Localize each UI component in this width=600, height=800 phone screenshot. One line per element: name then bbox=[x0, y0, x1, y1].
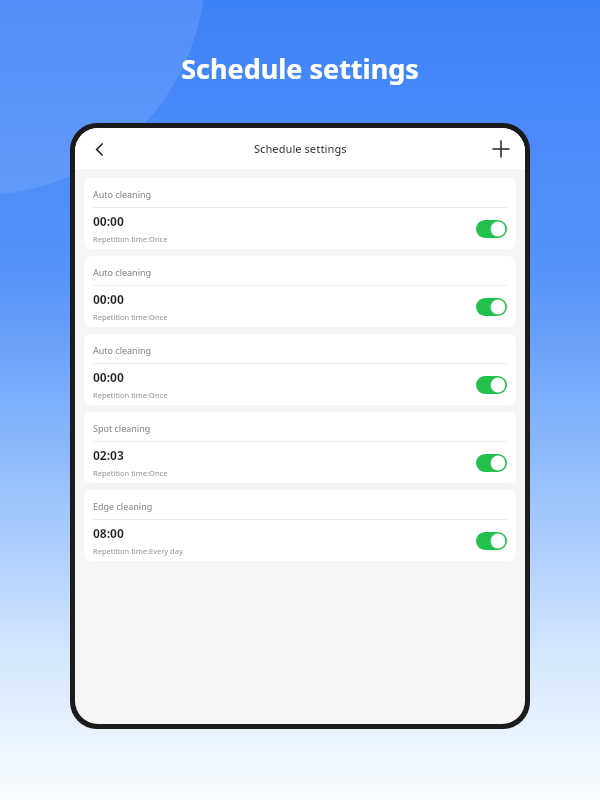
button[interactable]: Toggle schedule on bbox=[476, 532, 507, 550]
button[interactable]: Auto cleaning bbox=[84, 178, 516, 249]
staticText: Auto cleaning bbox=[93, 266, 152, 278]
staticText: Repetition time:Once bbox=[93, 390, 168, 400]
staticText: Repetition time:Once bbox=[93, 234, 168, 244]
staticText: 02:03 bbox=[93, 447, 124, 463]
staticText: 00:00 bbox=[93, 213, 124, 229]
staticText: Auto cleaning bbox=[93, 188, 152, 200]
staticText: Spot cleaning bbox=[93, 422, 151, 434]
staticText: Auto cleaning bbox=[93, 344, 152, 356]
staticText: Schedule settings bbox=[0, 50, 600, 87]
staticText: Repetition time:Once bbox=[93, 312, 168, 322]
staticText: Schedule settings bbox=[254, 141, 347, 156]
staticText: 00:00 bbox=[93, 291, 124, 307]
staticText: 00:00 bbox=[93, 369, 124, 385]
staticText: Edge cleaning bbox=[93, 500, 153, 512]
button[interactable]: Auto cleaning bbox=[84, 334, 516, 405]
button[interactable]: Toggle schedule on bbox=[476, 454, 507, 472]
staticText: 08:00 bbox=[93, 525, 124, 541]
button[interactable]: Toggle schedule on bbox=[476, 376, 507, 394]
staticText: Repetition time:Every day bbox=[93, 546, 183, 556]
staticText: Repetition time:Once bbox=[93, 468, 168, 478]
button[interactable]: Add schedule bbox=[485, 133, 517, 165]
button[interactable]: Toggle schedule on bbox=[476, 220, 507, 238]
button[interactable]: Edge cleaning bbox=[84, 490, 516, 561]
button[interactable]: Back bbox=[83, 133, 115, 165]
button[interactable]: Spot cleaning bbox=[84, 412, 516, 483]
button[interactable]: Auto cleaning bbox=[84, 256, 516, 327]
button[interactable]: Toggle schedule on bbox=[476, 298, 507, 316]
